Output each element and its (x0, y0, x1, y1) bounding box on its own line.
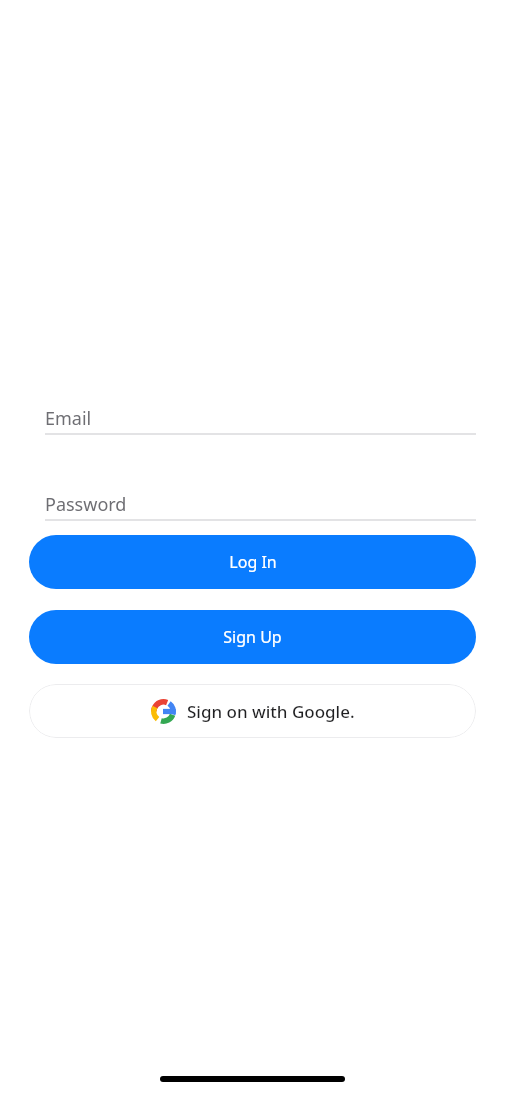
button[interactable]: Google logo (29, 684, 476, 738)
staticText: Sign Up (223, 626, 282, 648)
button[interactable]: Log In (29, 535, 476, 589)
staticText: Log In (229, 551, 277, 573)
staticText: Sign on with Google. (187, 700, 355, 723)
button[interactable]: Password (29, 489, 476, 521)
button[interactable]: Email (29, 403, 476, 435)
button[interactable]: Sign Up (29, 610, 476, 664)
staticText: Email (45, 406, 92, 431)
other: Google logo (151, 699, 176, 724)
staticText: Password (45, 492, 127, 517)
